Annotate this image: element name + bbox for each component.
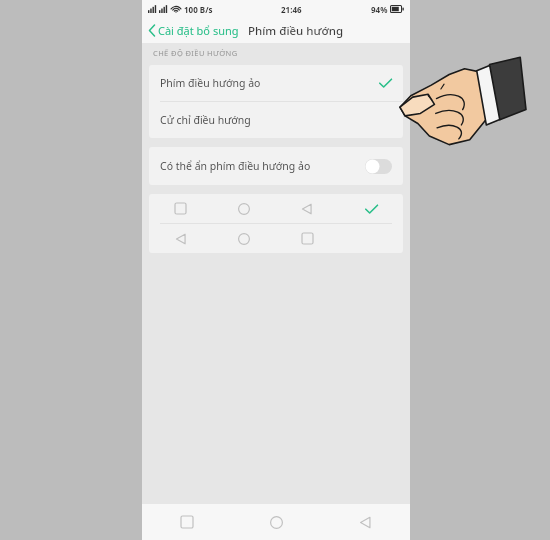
staticText: Có thể ẩn phím điều hướng ảo — [160, 159, 311, 173]
button[interactable]: Cài đặt bổ sung — [142, 20, 243, 41]
staticText: 94% — [371, 4, 388, 15]
staticText: Phím điều hướng ảo — [160, 76, 261, 90]
staticText: Cài đặt bổ sung — [158, 23, 239, 38]
staticText: 21:46 — [281, 4, 302, 15]
button[interactable]: Recents — [142, 504, 232, 540]
staticText: Phím điều hướng — [248, 23, 344, 39]
staticText: CHẾ ĐỘ ĐIỀU HƯỚNG — [153, 48, 238, 58]
button[interactable]: Có thể ẩn phím điều hướng ảo — [149, 147, 403, 185]
button[interactable]: Cử chỉ điều hướng — [149, 102, 403, 138]
staticText: Cử chỉ điều hướng — [160, 113, 251, 127]
button[interactable]: Phím điều hướng ảo — [149, 65, 403, 101]
staticText: 100 B/s — [184, 4, 213, 15]
button[interactable]: Toggle hide navigation keys — [365, 159, 392, 174]
button[interactable]: Layout back home recents — [149, 224, 403, 253]
button[interactable]: Back — [321, 504, 410, 540]
button[interactable]: Layout recents home back, selected — [149, 194, 403, 223]
button[interactable]: Home — [232, 504, 321, 540]
